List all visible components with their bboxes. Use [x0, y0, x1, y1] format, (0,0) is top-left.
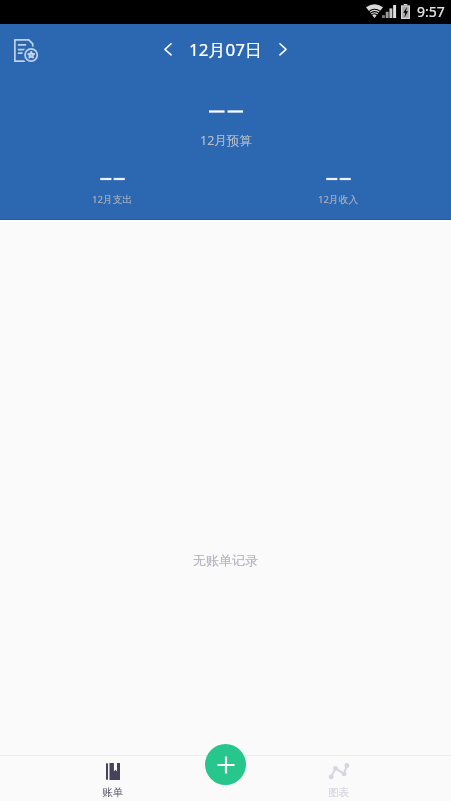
staticText: 12月07日	[189, 38, 262, 61]
staticText: 12月收入	[318, 193, 359, 206]
staticText: 图表	[328, 786, 349, 799]
button[interactable]: Add record	[205, 744, 246, 785]
staticText: 账单	[102, 786, 123, 799]
button[interactable]: Bills	[6, 30, 46, 70]
button[interactable]: Previous day	[152, 33, 184, 65]
staticText: 9:57	[417, 2, 445, 21]
button[interactable]: 账单	[0, 756, 225, 799]
staticText: 12月支出	[92, 193, 133, 206]
button[interactable]: 图表	[225, 756, 451, 799]
staticText: 无账单记录	[193, 552, 258, 568]
staticText: 12月预算	[200, 132, 252, 149]
button[interactable]: Next day	[267, 33, 299, 65]
